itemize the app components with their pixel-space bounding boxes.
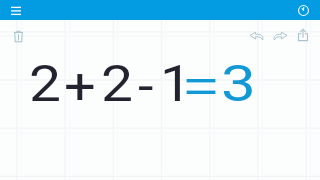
staticText: 3	[221, 55, 257, 114]
staticText: 2	[101, 55, 134, 114]
button[interactable]: Menu	[6, 0, 26, 20]
button[interactable]: Share	[293, 26, 313, 46]
staticText: 2	[29, 55, 62, 114]
staticText: +	[64, 58, 96, 117]
button[interactable]: Delete	[8, 26, 28, 46]
button[interactable]: Undo	[247, 26, 267, 46]
staticText: 1	[160, 55, 192, 114]
button[interactable]: History	[293, 0, 313, 20]
staticText: -	[138, 57, 154, 116]
button[interactable]: Redo	[270, 26, 290, 46]
